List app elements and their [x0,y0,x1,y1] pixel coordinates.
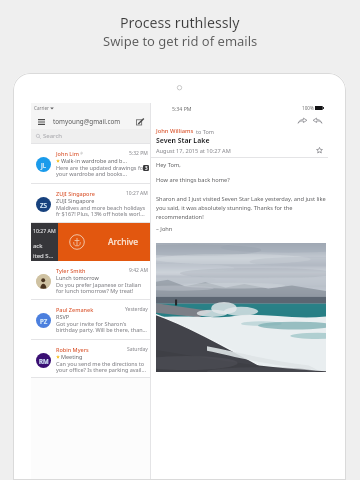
staticText: 5:32 PM [129,150,148,157]
staticText: Archive [108,236,139,248]
staticText: Sharon and I just visited Seven Star Lak… [156,195,327,220]
button[interactable]: Compose [133,115,146,128]
staticText: tomyoung@gmail.com [53,117,121,126]
staticText: ZUJI Singapore [56,190,95,197]
staticText: Saturday [127,346,148,353]
button[interactable]: ZS [31,184,150,223]
staticText: 10:27 AM [126,190,148,197]
button[interactable]: Menu [35,115,48,128]
staticText: Can you send me the directions to your o… [56,360,149,374]
staticText: Meeting [61,353,83,360]
staticText: Got your invite for Sharon's birthday pa… [56,320,149,334]
staticText: Carrier [34,105,49,111]
staticText: Robin Myers [56,346,89,353]
staticText: Hey Tom, [156,161,181,169]
staticText: JL [41,161,47,169]
staticText: Yesterday [125,306,148,313]
staticText: Lunch tomorrow [56,274,99,281]
staticText: ack [33,242,43,250]
staticText: ited S... [33,252,54,260]
staticText: 3 [145,165,148,171]
staticText: – John [156,225,173,233]
button[interactable]: Tyler Smith [31,261,150,300]
staticText: Tyler Smith [56,267,86,274]
staticText: to Tom [196,128,214,135]
staticText: PZ [40,317,48,325]
staticText: RM [39,357,49,365]
staticText: Walk-in wardrobe and b... [61,157,127,164]
staticText: Do you prefer Japanese or Italian for lu… [56,281,149,295]
button[interactable]: Forward [296,114,309,127]
staticText: 9:42 AM [129,267,148,274]
staticText: Maldives and more beach holidays fr $167… [56,204,149,218]
button[interactable]: Star [315,146,324,155]
staticText: ZS [40,201,47,209]
staticText: John Williams [156,127,194,135]
staticText: How are things back home? [156,176,230,184]
staticText: August 17, 2015 at 10:27 AM [156,147,231,155]
button[interactable]: RM [31,340,150,378]
button[interactable]: Search [31,129,150,143]
staticText: 10:27 AM [33,227,56,234]
staticText: 5:34 PM [172,105,192,112]
staticText: RSVP [56,313,70,320]
button[interactable]: JL [31,144,150,184]
button[interactable]: Archive [58,223,150,261]
staticText: Seven Star Lake [156,136,210,145]
staticText: Paul Zemanek [56,306,94,313]
button[interactable]: PZ [31,300,150,340]
staticText: Swipe to get rid of emails [103,32,258,50]
staticText: Here are the updated drawings for your w… [56,164,149,178]
staticText: 100% [302,105,314,111]
staticText: John Lim [56,150,79,157]
staticText: ZUJI Singapore [56,197,95,204]
staticText: Process ruthlessly [120,13,240,32]
button[interactable]: Reply [311,114,324,127]
staticText: Search [43,132,62,140]
